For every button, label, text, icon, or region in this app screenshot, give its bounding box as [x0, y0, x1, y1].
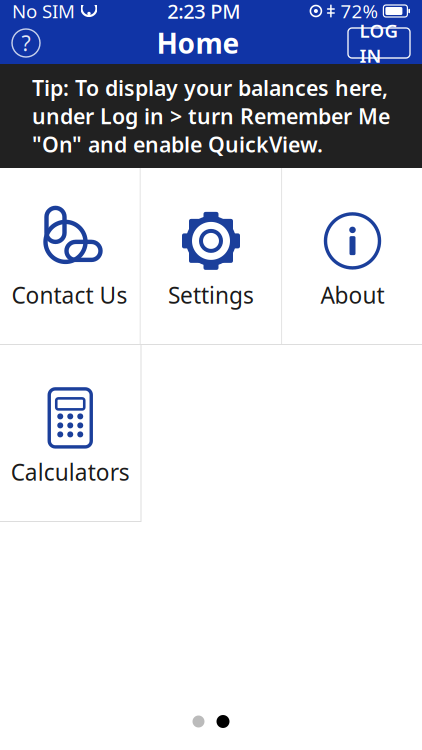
staticText: No SIM [12, 0, 75, 23]
button[interactable]: Settings [141, 168, 281, 344]
staticText: Home [156, 24, 239, 62]
staticText: Tip: To display your balances here, unde… [32, 73, 390, 158]
button[interactable]: Help [4, 21, 48, 65]
staticText: LOG IN [359, 18, 398, 68]
button[interactable]: About [282, 168, 422, 344]
staticText: Calculators [11, 457, 130, 487]
button[interactable]: Calculators [0, 345, 140, 521]
staticText: 2:23 PM [167, 0, 240, 24]
staticText: Settings [168, 280, 254, 310]
staticText: About [320, 280, 384, 310]
button[interactable]: LOG IN [348, 28, 410, 58]
staticText: Contact Us [11, 280, 127, 310]
staticText: 72% [340, 0, 378, 23]
staticText: ? [21, 29, 30, 57]
button[interactable]: Contact Us [0, 168, 140, 344]
